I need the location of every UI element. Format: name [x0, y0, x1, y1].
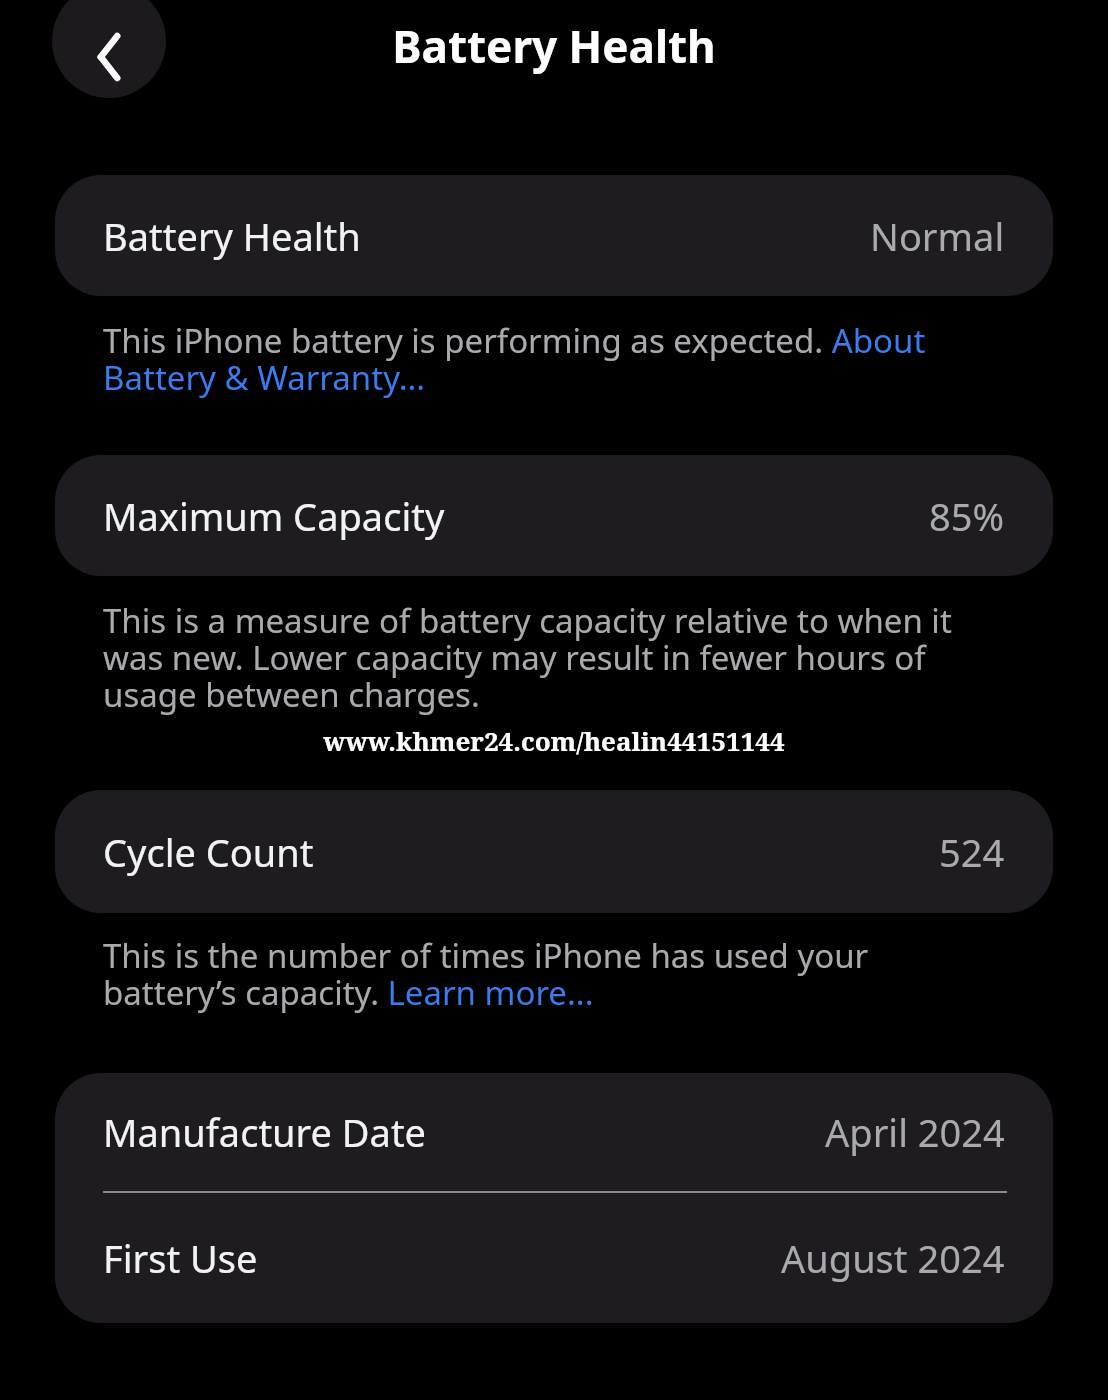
- staticText: First Use: [103, 1232, 258, 1284]
- staticText: August 2024: [781, 1232, 1005, 1284]
- staticText: April 2024: [825, 1106, 1005, 1158]
- button[interactable]: Cycle Count: [55, 790, 1053, 913]
- button[interactable]: Battery Health: [55, 175, 1053, 296]
- staticText: 524: [939, 826, 1005, 878]
- staticText: 85%: [929, 490, 1005, 542]
- staticText: This is the number of times iPhone has u…: [103, 933, 1008, 1015]
- button[interactable]: Manufacture Date: [55, 1073, 1053, 1191]
- staticText: Normal: [870, 210, 1005, 262]
- button[interactable]: First Use: [55, 1193, 1053, 1323]
- staticText: Manufacture Date: [103, 1106, 427, 1158]
- staticText: Battery Health: [0, 16, 1108, 76]
- staticText: This iPhone battery is performing as exp…: [103, 318, 1008, 400]
- button[interactable]: Maximum Capacity: [55, 455, 1053, 576]
- staticText: www.khmer24.com/healin44151144: [0, 723, 1108, 758]
- staticText: This is a measure of battery capacity re…: [103, 598, 1008, 717]
- staticText: Maximum Capacity: [103, 490, 445, 542]
- button[interactable]: Back: [52, 0, 166, 98]
- staticText: Cycle Count: [103, 826, 314, 878]
- staticText: Battery Health: [103, 210, 361, 262]
